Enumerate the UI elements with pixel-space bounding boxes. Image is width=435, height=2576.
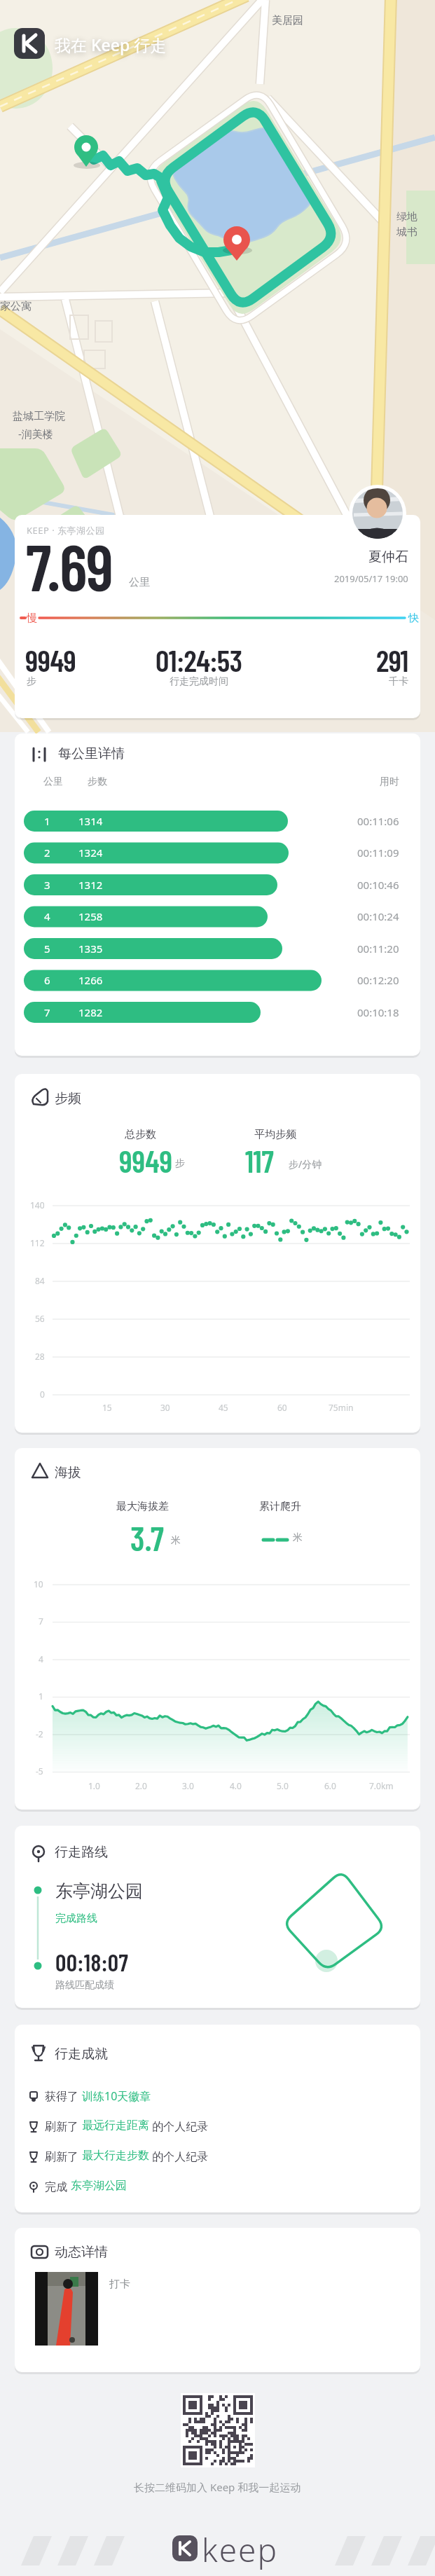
staticText: 长按二维码加入 Keep 和我一起运动 — [134, 2480, 301, 2494]
staticText: 00:10:46 — [357, 878, 399, 892]
staticText: 公里 — [129, 576, 150, 589]
staticText: -2 — [36, 1728, 43, 1740]
staticText: 刷新了 — [45, 2119, 82, 2134]
staticText: 1335 — [78, 942, 103, 956]
staticText: 140 — [30, 1199, 45, 1211]
staticText: 30 — [160, 1402, 170, 1413]
staticText: 00:11:20 — [357, 942, 399, 956]
staticText: 00:10:18 — [357, 1005, 399, 1019]
staticText: 2.0 — [135, 1780, 147, 1791]
staticText: 56 — [35, 1313, 45, 1324]
staticText: 获得了 — [45, 2088, 82, 2104]
staticText: 米 — [293, 1531, 303, 1544]
staticText: 5.0 — [277, 1780, 289, 1791]
staticText: keep — [202, 2528, 279, 2572]
staticText: 00:11:06 — [357, 814, 399, 828]
staticText: 9949 — [119, 1142, 173, 1179]
staticText: 1324 — [78, 846, 103, 860]
staticText: 00:12:20 — [357, 973, 399, 987]
staticText: 慢 — [27, 612, 37, 625]
staticText: 00:18:07 — [55, 1948, 129, 1976]
staticText: 最大行走步数 — [82, 2149, 149, 2163]
staticText: 7.0km — [369, 1780, 394, 1791]
staticText: 家公寓 — [0, 300, 32, 313]
staticText: 我在 Keep 行走 — [55, 34, 167, 55]
staticText: 1 — [39, 1690, 43, 1702]
staticText: 盐城工学院 — [13, 410, 65, 423]
staticText: -5 — [36, 1765, 43, 1777]
staticText: 东亭湖公园 — [71, 2179, 127, 2193]
staticText: 累计爬升 — [259, 1500, 301, 1513]
staticText: 的个人纪录 — [149, 2149, 209, 2164]
staticText: 5 — [44, 942, 50, 956]
staticText: 3 — [44, 878, 50, 892]
staticText: 291 — [376, 642, 408, 678]
staticText: 东亭湖公园 — [55, 1880, 143, 1902]
staticText: 步/分钟 — [289, 1157, 322, 1171]
staticText: 75min — [329, 1402, 354, 1413]
staticText: 1282 — [78, 1005, 103, 1019]
staticText: 4 — [44, 909, 50, 923]
staticText: 行走成就 — [55, 2046, 108, 2062]
staticText: 45 — [219, 1402, 228, 1413]
staticText: 9949 — [25, 642, 76, 678]
staticText: 1 — [44, 814, 50, 828]
staticText: 美居园 — [272, 14, 303, 27]
staticText: 6 — [44, 973, 50, 987]
staticText: 112 — [30, 1237, 45, 1248]
staticText: 打卡 — [109, 2278, 130, 2291]
staticText: 最大海拔差 — [116, 1500, 169, 1513]
staticText: 117 — [245, 1142, 274, 1179]
staticText: 绿地 — [396, 210, 417, 223]
staticText: 刷新了 — [45, 2149, 82, 2164]
staticText: 夏仲石 — [368, 549, 408, 565]
staticText: 7.69 — [26, 527, 113, 604]
staticText: 用时 — [380, 776, 399, 788]
staticText: 84 — [35, 1275, 45, 1286]
staticText: 完成路线 — [55, 1912, 97, 1925]
staticText: 2019/05/17 19:00 — [334, 572, 408, 585]
staticText: 28 — [35, 1351, 45, 1362]
staticText: 行走路线 — [55, 1844, 108, 1861]
staticText: 完成 — [45, 2179, 71, 2194]
staticText: 最远行走距离 — [82, 2119, 149, 2133]
staticText: 步频 — [55, 1090, 81, 1107]
staticText: 4.0 — [230, 1780, 242, 1791]
staticText: 00:11:09 — [357, 846, 399, 860]
staticText: 步 — [175, 1157, 185, 1170]
staticText: 海拔 — [55, 1464, 81, 1481]
staticText: 步 — [27, 675, 36, 688]
staticText: 城书 — [396, 226, 417, 239]
staticText: 2 — [44, 846, 50, 860]
staticText: 7 — [39, 1616, 43, 1627]
staticText: 公里 — [43, 776, 63, 788]
staticText: 1266 — [78, 973, 103, 987]
staticText: 动态详情 — [55, 2244, 108, 2261]
staticText: 行走完成时间 — [170, 675, 228, 688]
staticText: 总步数 — [125, 1128, 156, 1141]
staticText: 米 — [171, 1534, 181, 1547]
staticText: 1314 — [78, 814, 103, 828]
staticText: 15 — [102, 1402, 112, 1413]
staticText: 01:24:53 — [156, 642, 242, 678]
staticText: 7 — [44, 1005, 50, 1019]
staticText: 千卡 — [389, 675, 408, 688]
staticText: 00:10:24 — [357, 909, 399, 923]
staticText: 60 — [277, 1402, 287, 1413]
staticText: 1258 — [78, 909, 103, 923]
staticText: 10 — [34, 1578, 43, 1590]
staticText: 路线匹配成绩 — [55, 1979, 114, 1992]
staticText: 6.0 — [324, 1780, 336, 1791]
staticText: -润美楼 — [18, 427, 53, 441]
staticText: 4 — [39, 1653, 43, 1665]
staticText: 1.0 — [88, 1780, 100, 1791]
staticText: 平均步频 — [254, 1128, 296, 1141]
staticText: 快 — [408, 612, 419, 625]
staticText: 训练10天徽章 — [82, 2088, 151, 2104]
staticText: 1312 — [78, 878, 103, 892]
staticText: 的个人纪录 — [149, 2119, 209, 2134]
staticText: 步数 — [88, 776, 107, 788]
staticText: 3.7 — [130, 1517, 164, 1558]
staticText: 3.0 — [182, 1780, 194, 1791]
staticText: 每公里详情 — [58, 745, 125, 762]
